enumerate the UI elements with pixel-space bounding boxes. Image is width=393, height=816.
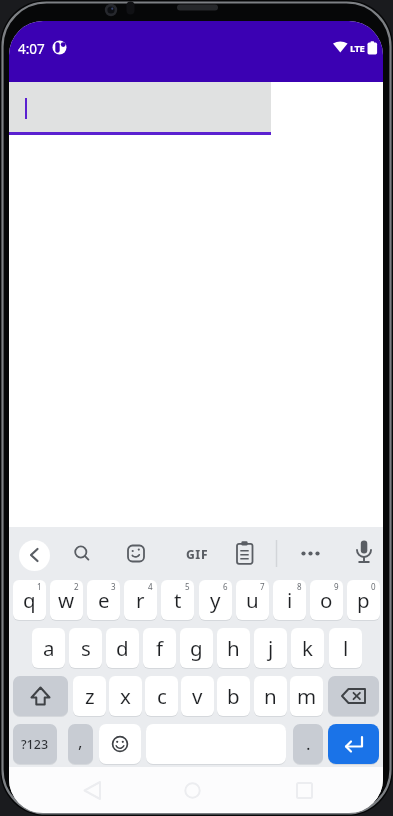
button[interactable]: p [347,580,380,620]
staticText: o [320,586,333,614]
staticText: r [136,586,145,614]
button[interactable] [9,82,271,132]
button[interactable]: f [143,628,176,668]
button[interactable] [121,539,151,569]
staticText: m [297,682,317,710]
button[interactable] [328,676,379,716]
button[interactable]: b [217,676,250,716]
button[interactable] [66,539,96,569]
button[interactable]: g [180,628,213,668]
button[interactable] [296,539,326,569]
button[interactable]: v [181,676,214,716]
button[interactable]: t [161,580,194,620]
staticText: k [302,634,313,662]
staticText: 2 [74,581,79,592]
button[interactable]: ?123 [13,724,57,764]
staticText: x [120,682,131,710]
staticText: v [192,682,203,710]
staticText: d [116,634,129,662]
staticText: c [157,682,167,710]
staticText: s [81,634,91,662]
button[interactable]: h [217,628,250,668]
button[interactable]: k [291,628,324,668]
staticText: b [227,682,240,710]
button[interactable]: o [310,580,343,620]
button[interactable]: , [68,724,93,764]
staticText: t [174,586,182,614]
button[interactable]: r [124,580,157,620]
staticText: g [190,634,203,662]
button[interactable]: a [32,628,65,668]
staticText: i [287,586,293,614]
button[interactable]: l [329,628,362,668]
button[interactable] [284,778,324,803]
staticText: GIF [186,546,209,562]
staticText: 8 [297,581,302,592]
staticText: l [343,634,349,662]
staticText: , [78,730,83,753]
button[interactable] [328,724,379,764]
button[interactable] [182,539,212,569]
staticText: j [268,634,274,662]
button[interactable] [172,778,212,803]
button[interactable] [99,724,141,764]
button[interactable] [13,676,68,716]
staticText: e [98,586,110,614]
button[interactable]: z [73,676,106,716]
button[interactable] [349,539,379,569]
button[interactable]: x [109,676,142,716]
staticText: ?123 [21,736,49,753]
button[interactable]: d [106,628,139,668]
staticText: . [306,732,311,755]
button[interactable]: j [254,628,287,668]
button[interactable]: u [236,580,269,620]
button[interactable] [19,540,50,571]
staticText: u [246,586,259,614]
staticText: 3 [111,581,116,592]
staticText: q [23,586,36,614]
button[interactable]: y [199,580,232,620]
button[interactable] [9,767,383,812]
staticText: 5 [185,581,190,592]
staticText: f [156,634,164,662]
staticText: LTE [350,42,365,55]
button[interactable] [230,539,260,569]
button[interactable]: w [50,580,83,620]
button[interactable]: . [293,724,323,764]
button[interactable]: e [87,580,120,620]
staticText: h [227,634,240,662]
staticText: n [264,682,277,710]
staticText: 9 [334,581,339,592]
button[interactable]: n [254,676,287,716]
staticText: 1 [37,581,42,592]
button[interactable]: s [69,628,102,668]
staticText: y [210,586,221,614]
button[interactable] [73,778,113,803]
staticText: p [357,586,370,614]
staticText: 0 [371,581,376,592]
button[interactable]: m [290,676,323,716]
button[interactable]: c [145,676,178,716]
staticText: 4:07 [18,40,45,58]
staticText: 6 [223,581,228,592]
staticText: w [58,586,75,614]
button[interactable]: q [13,580,46,620]
staticText: z [85,682,95,710]
staticText: a [43,634,55,662]
staticText: 7 [260,581,265,592]
staticText: 4 [148,581,153,592]
button[interactable]: i [273,580,306,620]
